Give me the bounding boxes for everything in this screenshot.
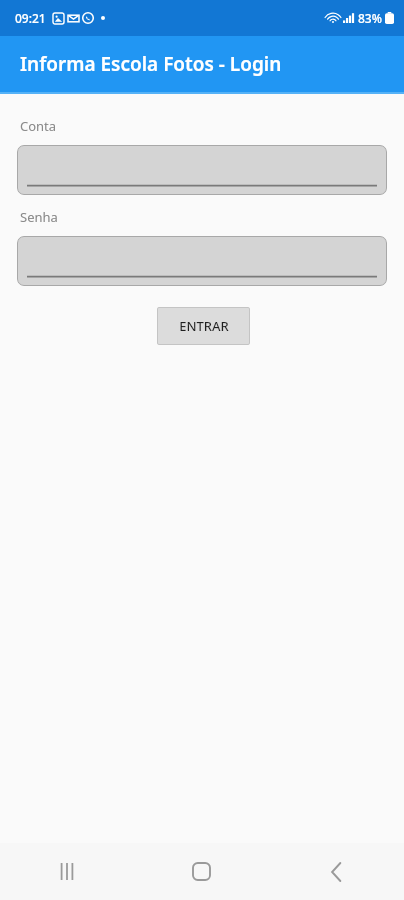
button[interactable]: Home bbox=[134, 843, 269, 900]
button[interactable] bbox=[17, 236, 387, 286]
staticText: Conta bbox=[20, 117, 57, 135]
staticText: Informa Escola Fotos - Login bbox=[20, 51, 282, 77]
button[interactable] bbox=[17, 145, 387, 195]
staticText: 09:21 bbox=[15, 10, 46, 26]
staticText: Senha bbox=[20, 208, 58, 226]
button[interactable]: ENTRAR bbox=[157, 307, 250, 345]
button[interactable]: Recent apps bbox=[0, 843, 134, 900]
button[interactable]: Back bbox=[269, 843, 404, 900]
staticText: 83% bbox=[358, 10, 382, 26]
staticText: ENTRAR bbox=[179, 317, 229, 335]
